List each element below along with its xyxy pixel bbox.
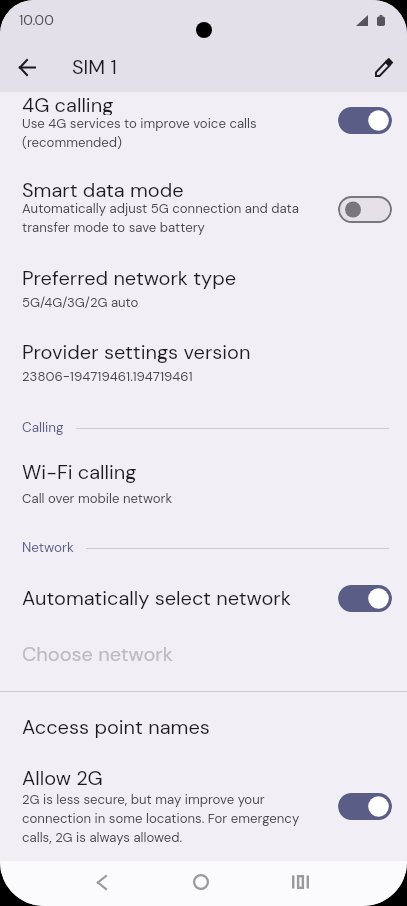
staticText: Smart data mode bbox=[22, 177, 184, 200]
button[interactable]: Automatically select network bbox=[338, 582, 392, 614]
button[interactable]: Home bbox=[179, 862, 223, 906]
staticText: Network bbox=[22, 539, 74, 557]
staticText: 23806-194719461.194719461 bbox=[22, 368, 193, 385]
button[interactable]: Smart data mode bbox=[338, 193, 392, 225]
button[interactable]: Recent apps bbox=[278, 862, 322, 906]
staticText: Allow 2G bbox=[22, 765, 103, 791]
staticText: 2G is less secure, but may improve your … bbox=[22, 791, 300, 846]
staticText: Call over mobile network bbox=[22, 490, 173, 507]
staticText: Automatically select network bbox=[22, 585, 291, 611]
staticText: Preferred network type bbox=[22, 265, 237, 291]
staticText: Choose network bbox=[22, 641, 173, 667]
staticText: Provider settings version bbox=[22, 339, 251, 365]
staticText: 4G calling bbox=[22, 92, 114, 115]
button[interactable]: Allow 2G bbox=[0, 751, 407, 854]
staticText: Calling bbox=[22, 419, 64, 437]
button[interactable]: Automatically select network bbox=[0, 562, 407, 629]
staticText: Automatically adjust 5G connection and d… bbox=[22, 200, 299, 236]
button[interactable]: Edit bbox=[364, 47, 404, 87]
button[interactable]: Wi-Fi calling bbox=[0, 442, 407, 521]
staticText: Wi-Fi calling bbox=[22, 459, 137, 485]
button[interactable]: Access point names bbox=[0, 692, 407, 751]
staticText: Use 4G services to improve voice calls (… bbox=[22, 115, 257, 151]
button[interactable]: Smart data mode bbox=[0, 161, 407, 250]
staticText: Access point names bbox=[22, 714, 210, 740]
button[interactable]: Back bbox=[80, 862, 124, 906]
button[interactable]: Allow 2G bbox=[338, 790, 392, 822]
staticText: SIM 1 bbox=[72, 54, 117, 80]
button[interactable]: Provider settings version bbox=[0, 327, 407, 399]
staticText: 10.00 bbox=[19, 11, 54, 29]
button[interactable]: Choose network bbox=[0, 629, 407, 691]
button[interactable]: 4G calling bbox=[338, 104, 392, 136]
staticText: 5G/4G/3G/2G auto bbox=[22, 294, 139, 311]
button[interactable]: 4G calling bbox=[0, 92, 407, 161]
button[interactable]: Preferred network type bbox=[0, 250, 407, 327]
button[interactable]: Navigate up bbox=[7, 47, 47, 87]
